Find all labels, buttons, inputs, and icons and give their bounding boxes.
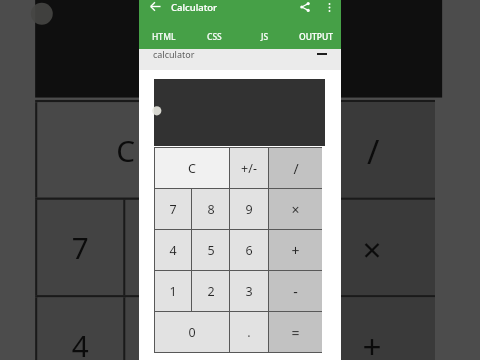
- staticText: HTML: [152, 31, 176, 43]
- staticText: 5: [207, 242, 215, 259]
- button[interactable]: +/-: [230, 148, 268, 188]
- staticText: +: [361, 324, 383, 360]
- button[interactable]: 4: [37, 297, 123, 360]
- staticText: CSS: [207, 31, 222, 43]
- staticText: ×: [291, 200, 300, 219]
- staticText: 8: [161, 228, 180, 269]
- button[interactable]: /: [269, 148, 322, 188]
- button[interactable]: 0: [155, 312, 229, 352]
- button[interactable]: /: [309, 102, 435, 197]
- staticText: 1: [169, 283, 177, 300]
- staticText: 9: [252, 228, 271, 269]
- button[interactable]: C: [37, 102, 214, 197]
- staticText: /: [293, 159, 299, 178]
- staticText: +/-: [242, 131, 280, 171]
- button[interactable]: HTML: [139, 28, 189, 46]
- button[interactable]: More options: [321, 0, 337, 15]
- staticText: 6: [252, 326, 271, 360]
- staticText: 0: [188, 324, 196, 341]
- staticText: 9: [245, 201, 253, 218]
- button[interactable]: 6: [216, 297, 306, 360]
- staticText: /: [366, 128, 380, 174]
- button[interactable]: +/-: [216, 102, 306, 197]
- staticText: Calculator: [171, 1, 218, 14]
- button[interactable]: +: [309, 297, 435, 360]
- staticText: +/-: [241, 160, 257, 177]
- staticText: 6: [245, 242, 253, 259]
- staticText: C: [188, 160, 196, 177]
- button[interactable]: 2: [192, 271, 229, 311]
- staticText: =: [291, 323, 300, 342]
- staticText: 7: [169, 201, 177, 218]
- button[interactable]: C: [155, 148, 229, 188]
- staticText: +: [291, 241, 300, 260]
- staticText: JS: [261, 31, 269, 43]
- button[interactable]: =: [269, 312, 322, 352]
- button[interactable]: OUTPUT: [290, 28, 341, 46]
- staticText: 7: [71, 228, 90, 269]
- button[interactable]: 1: [155, 271, 191, 311]
- staticText: calculator: [153, 48, 195, 60]
- button[interactable]: Back: [147, 0, 163, 14]
- staticText: ×: [361, 226, 383, 271]
- button[interactable]: ×: [309, 200, 435, 295]
- button[interactable]: 9: [216, 200, 306, 295]
- button[interactable]: JS: [239, 28, 290, 46]
- staticText: 4: [71, 326, 90, 360]
- button[interactable]: 8: [126, 200, 214, 295]
- button[interactable]: -: [269, 271, 322, 311]
- button[interactable]: 7: [37, 200, 123, 295]
- button[interactable]: 9: [230, 189, 268, 229]
- staticText: C: [116, 131, 135, 171]
- button[interactable]: Share: [297, 0, 313, 15]
- button[interactable]: 7: [155, 189, 191, 229]
- button[interactable]: Collapse: [316, 48, 328, 60]
- staticText: .: [247, 324, 251, 341]
- button[interactable]: 6: [230, 230, 268, 270]
- staticText: 8: [207, 201, 215, 218]
- button[interactable]: +: [269, 230, 322, 270]
- button[interactable]: 3: [230, 271, 268, 311]
- button[interactable]: 5: [192, 230, 229, 270]
- button[interactable]: ×: [269, 189, 322, 229]
- staticText: 3: [245, 283, 253, 300]
- button[interactable]: 5: [126, 297, 214, 360]
- button[interactable]: .: [230, 312, 268, 352]
- staticText: -: [293, 282, 298, 301]
- button[interactable]: 4: [155, 230, 191, 270]
- staticText: 4: [169, 242, 177, 259]
- button[interactable]: 8: [192, 189, 229, 229]
- button[interactable]: CSS: [189, 28, 239, 46]
- staticText: OUTPUT: [299, 31, 333, 43]
- staticText: 2: [207, 283, 215, 300]
- staticText: 5: [161, 326, 180, 360]
